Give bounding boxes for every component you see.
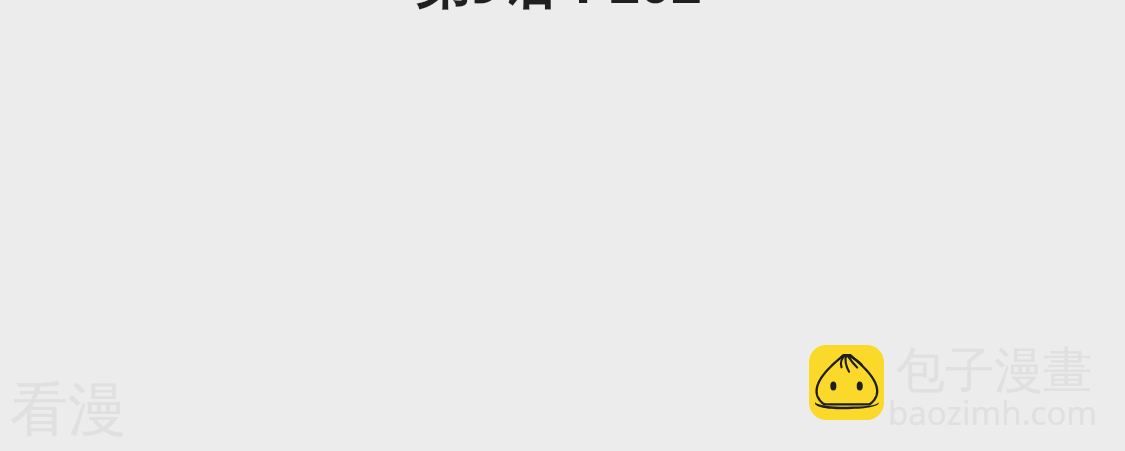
staticText: 第9话：202	[416, 0, 702, 19]
button[interactable]: baozimh app icon	[809, 345, 884, 420]
staticText: 看漫	[10, 373, 126, 446]
staticText: 包子漫畫	[896, 340, 1092, 402]
staticText: baozimh.com	[888, 390, 1098, 435]
button[interactable]: 第9话：202	[416, 0, 702, 19]
